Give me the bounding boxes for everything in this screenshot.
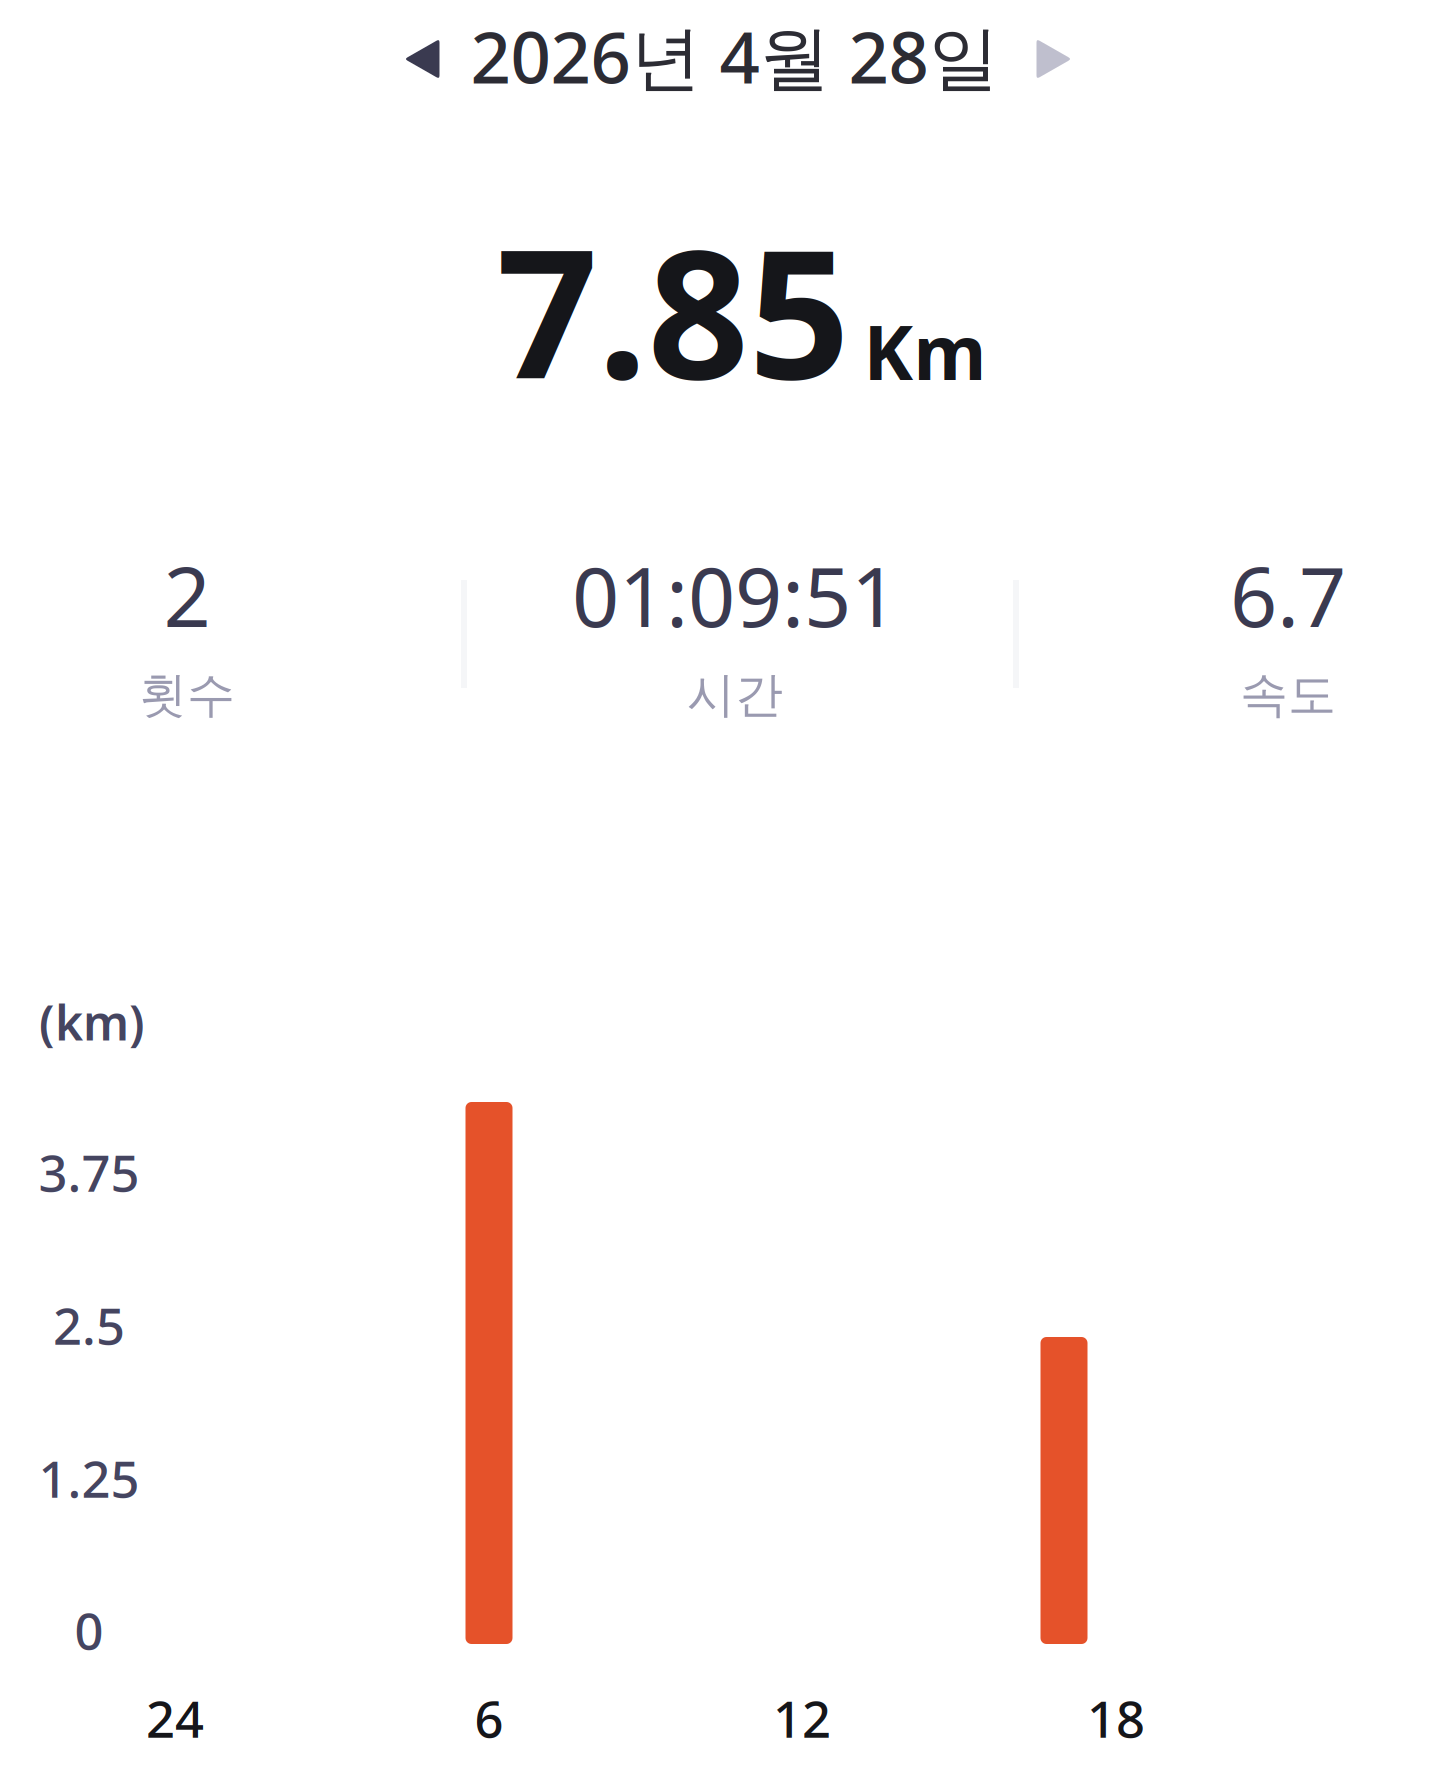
staticText: 1.25 bbox=[38, 1444, 139, 1512]
staticText: 3.75 bbox=[38, 1138, 139, 1206]
staticText: 속도 bbox=[1240, 665, 1336, 724]
staticText: 18 bbox=[1087, 1684, 1145, 1752]
staticText: 2026년 4월 28일 bbox=[470, 9, 999, 103]
staticText: 01:09:51 bbox=[572, 540, 898, 650]
button[interactable]: 2026년 4월 28일 bbox=[470, 8, 999, 104]
staticText: 7.85 bbox=[496, 192, 849, 428]
staticText: (km) bbox=[39, 990, 145, 1054]
staticText: 12 bbox=[773, 1684, 831, 1752]
staticText: 횟수 bbox=[139, 665, 235, 724]
staticText: 24 bbox=[146, 1684, 204, 1752]
staticText: 2 bbox=[163, 540, 210, 650]
staticText: 0 bbox=[74, 1596, 103, 1664]
staticText: 6.7 bbox=[1230, 540, 1346, 650]
staticText: 2.5 bbox=[53, 1291, 125, 1359]
button[interactable]: Previous day bbox=[378, 11, 466, 107]
staticText: Km bbox=[863, 301, 986, 401]
staticText: 시간 bbox=[687, 665, 783, 724]
staticText: 6 bbox=[474, 1684, 503, 1752]
button[interactable]: Next day bbox=[1010, 11, 1098, 107]
